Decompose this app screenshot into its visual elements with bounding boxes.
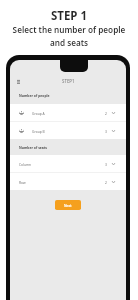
staticText: Number of seats: [19, 145, 48, 150]
staticText: 3: [105, 162, 107, 166]
staticText: Group A: [32, 111, 45, 115]
staticText: Row: [19, 180, 26, 184]
staticText: Column: [19, 162, 32, 166]
button[interactable]: Menu: [14, 77, 22, 85]
button[interactable]: Change value: [111, 179, 116, 184]
staticText: STEP 1: [0, 8, 138, 24]
button[interactable]: Next: [55, 200, 81, 210]
staticText: Next: [64, 203, 72, 207]
button[interactable]: Change value: [111, 128, 116, 133]
staticText: Group B: [32, 129, 45, 133]
staticText: 2: [105, 111, 107, 115]
button[interactable]: Column: [10, 155, 126, 172]
button[interactable]: Group A: [10, 104, 126, 121]
staticText: 2: [105, 180, 107, 184]
staticText: 3: [105, 129, 107, 133]
button[interactable]: Change value: [111, 110, 116, 115]
button[interactable]: Group B: [10, 122, 126, 139]
staticText: Select the number of people and seats: [0, 24, 138, 49]
staticText: Number of people: [19, 93, 50, 98]
staticText: STEP1: [62, 78, 75, 84]
button[interactable]: Change value: [111, 161, 116, 166]
button[interactable]: Row: [10, 173, 126, 190]
